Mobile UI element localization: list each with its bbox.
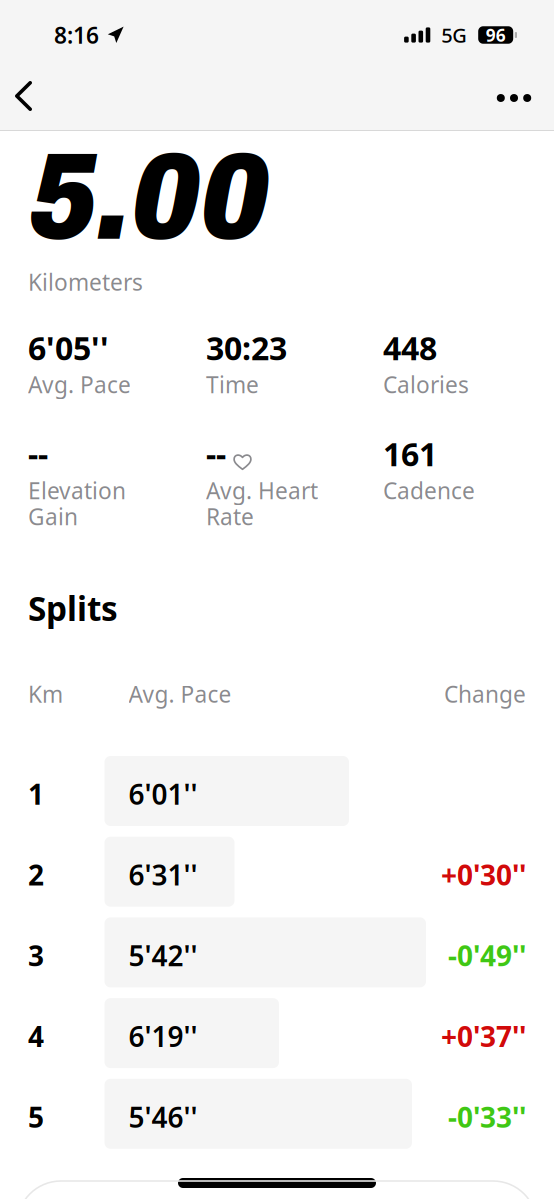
- staticText: 3: [28, 937, 44, 974]
- staticText: Rate: [206, 501, 254, 532]
- staticText: Avg. Heart: [206, 475, 318, 506]
- staticText: 6'05'': [28, 326, 109, 369]
- staticText: Avg. Pace: [28, 369, 131, 400]
- staticText: Cadence: [383, 475, 475, 506]
- staticText: 30:23: [206, 326, 287, 369]
- staticText: Time: [206, 369, 259, 400]
- staticText: 5G: [441, 22, 467, 48]
- staticText: --: [28, 432, 48, 475]
- staticText: -0'49'': [448, 937, 526, 974]
- staticText: +0'37'': [441, 1017, 526, 1055]
- staticText: 2: [28, 856, 44, 893]
- staticText: 4: [28, 1017, 44, 1055]
- staticText: 96: [486, 23, 506, 46]
- staticText: 6'31'': [128, 856, 197, 893]
- staticText: Calories: [383, 369, 469, 400]
- button[interactable]: 2: [0, 837, 554, 907]
- staticText: Gain: [28, 501, 78, 532]
- button[interactable]: More options: [479, 62, 554, 130]
- staticText: Kilometers: [28, 267, 143, 297]
- button[interactable]: 4: [0, 998, 554, 1068]
- staticText: Km: [28, 679, 63, 709]
- staticText: 5.00: [29, 131, 269, 264]
- staticText: +0'30'': [441, 856, 526, 893]
- staticText: 1: [28, 775, 44, 813]
- staticText: Change: [444, 679, 526, 709]
- staticText: Splits: [28, 586, 118, 630]
- button[interactable]: 1: [0, 756, 554, 826]
- staticText: 8:16: [54, 20, 99, 50]
- staticText: 5'42'': [128, 937, 197, 974]
- staticText: 5'46'': [128, 1098, 197, 1135]
- button[interactable]: 5: [0, 1079, 554, 1149]
- staticText: Avg. Pace: [128, 679, 231, 709]
- staticText: Elevation: [28, 475, 126, 506]
- button[interactable]: 3: [0, 917, 554, 987]
- staticText: 161: [383, 432, 437, 475]
- staticText: 6'01'': [128, 775, 197, 813]
- staticText: --: [206, 432, 226, 475]
- button[interactable]: Back: [0, 62, 50, 130]
- staticText: 5: [28, 1098, 44, 1135]
- staticText: 6'19'': [128, 1017, 197, 1055]
- staticText: -0'33'': [448, 1098, 526, 1135]
- staticText: 448: [383, 326, 437, 369]
